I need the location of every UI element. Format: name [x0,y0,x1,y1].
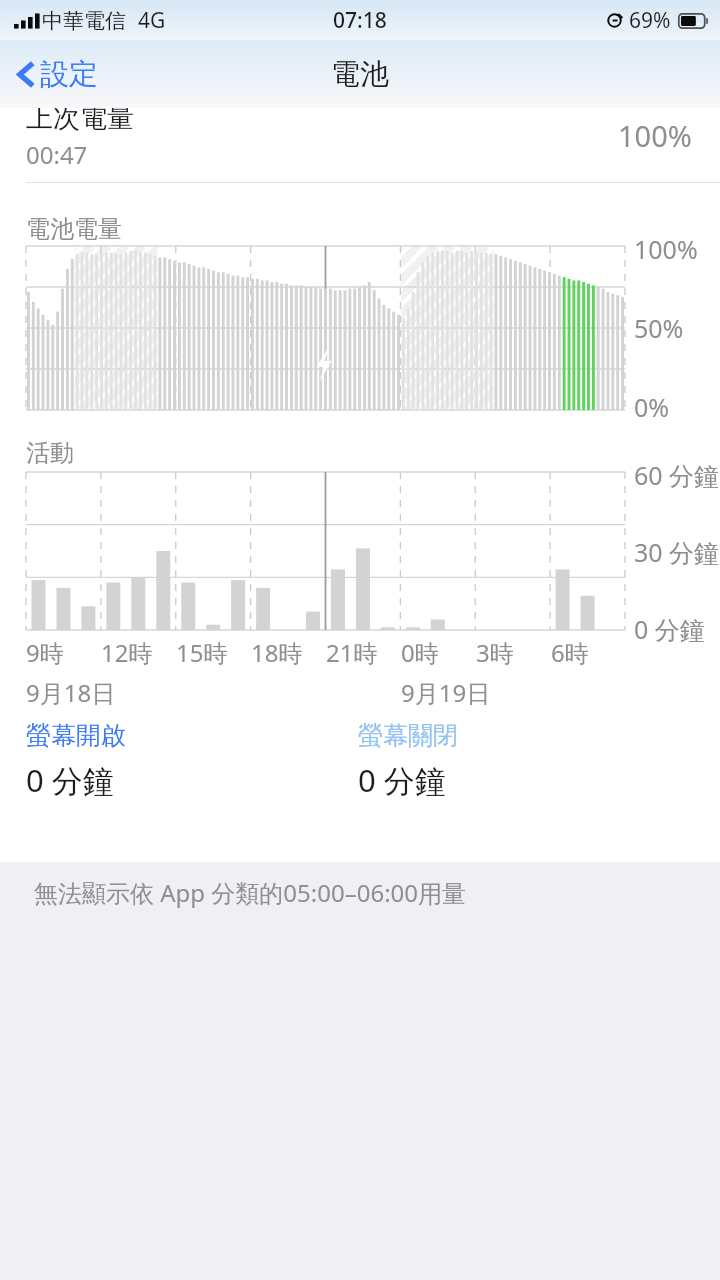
button[interactable]: Back to Settings [8,48,106,101]
staticText: 上次電量 [26,108,134,135]
staticText: 100% [634,232,698,266]
staticText: 100% [618,116,692,155]
staticText: 30 分鐘 [634,535,720,569]
staticText: 50% [634,311,684,345]
staticText: 69% [629,6,671,35]
staticText: 9時 [26,636,64,669]
staticText: 07:18 [333,6,387,35]
staticText: 60 分鐘 [634,458,720,492]
button[interactable]: 螢幕開啟 [20,716,132,805]
staticText: 3時 [476,636,514,669]
staticText: 0 分鐘 [634,612,705,646]
staticText: 無法顯示依 App 分類的05:00–06:00用量 [34,876,467,909]
staticText: 活動 [26,438,74,468]
staticText: 6時 [551,636,589,669]
staticText: 中華電信 [42,8,126,34]
staticText: 0 分鐘 [26,759,114,801]
staticText: 0 分鐘 [358,759,446,801]
staticText: 螢幕關閉 [358,720,458,751]
staticText: 0% [634,390,670,424]
staticText: 21時 [326,636,378,669]
staticText: 9月19日 [401,676,491,709]
staticText: 18時 [251,636,303,669]
button[interactable]: 螢幕關閉 [352,716,464,805]
other: Back to Settings [16,58,37,91]
staticText: 電池電量 [26,214,122,244]
staticText: 設定 [40,56,98,93]
staticText: 螢幕開啟 [26,720,126,751]
staticText: 00:47 [26,138,88,171]
staticText: 4G [138,6,166,35]
staticText: 15時 [176,636,228,669]
staticText: 12時 [101,636,153,669]
staticText: 電池 [331,56,389,93]
staticText: 9月18日 [26,676,116,709]
staticText: 0時 [401,636,439,669]
